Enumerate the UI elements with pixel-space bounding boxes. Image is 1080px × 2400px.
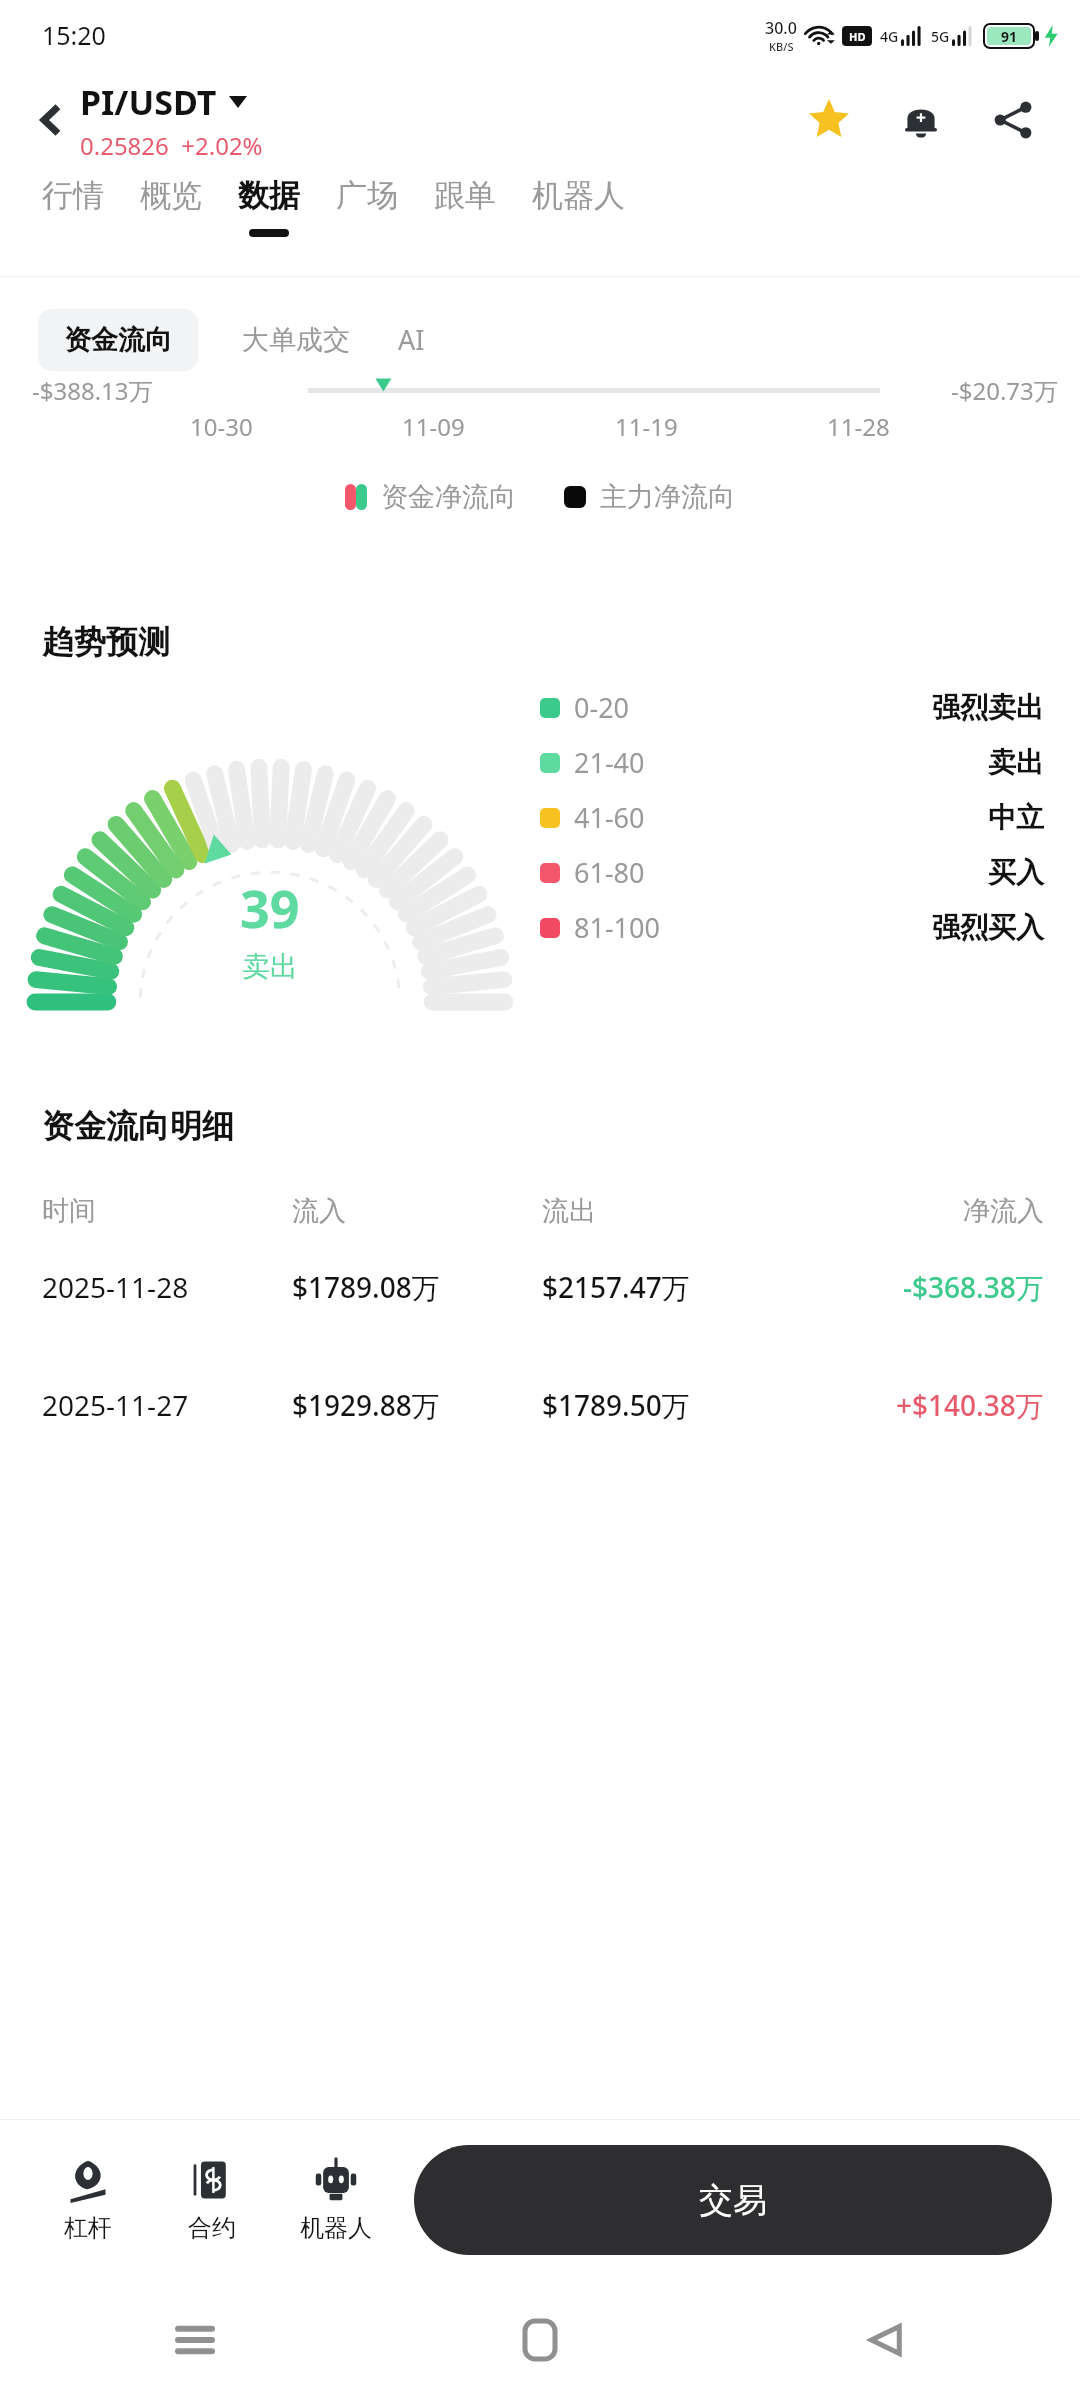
staticText: 强烈卖出: [932, 690, 1044, 725]
staticText: 时间: [42, 1194, 292, 1228]
staticText: $1789.50万: [542, 1386, 896, 1424]
staticText: 2025-11-28: [42, 1268, 292, 1306]
staticText: 21-40: [574, 744, 645, 781]
staticText: 概览: [140, 176, 202, 215]
button[interactable]: 数据: [220, 176, 318, 237]
staticText: $1929.88万: [292, 1386, 542, 1424]
staticText: 91: [1001, 27, 1018, 45]
button[interactable]: AI: [382, 307, 441, 372]
staticText: 买入: [988, 855, 1044, 890]
staticText: 强烈买入: [932, 910, 1044, 945]
button[interactable]: 大单成交: [220, 309, 372, 371]
staticText: 61-80: [574, 854, 645, 891]
staticText: +$140.38万: [896, 1386, 1044, 1424]
staticText: 机器人: [300, 2213, 372, 2243]
staticText: 卖出: [988, 745, 1044, 780]
staticText: 大单成交: [242, 323, 350, 357]
staticText: 中立: [988, 800, 1044, 835]
button[interactable]: 杠杆: [26, 2157, 150, 2243]
staticText: 主力净流向: [600, 480, 735, 514]
staticText: 41-60: [574, 799, 645, 836]
staticText: 0.25826 +2.02%: [80, 129, 263, 162]
button[interactable]: 跟单: [416, 176, 514, 237]
staticText: 81-100: [574, 909, 660, 946]
staticText: -$368.38万: [903, 1268, 1044, 1306]
staticText: 39: [240, 872, 300, 943]
staticText: 机器人: [532, 176, 625, 215]
button[interactable]: Favorite: [796, 87, 862, 153]
staticText: 0-20: [574, 689, 630, 726]
staticText: 跟单: [434, 176, 496, 215]
staticText: $2157.47万: [542, 1268, 903, 1306]
button[interactable]: Back: [840, 2295, 930, 2385]
button[interactable]: 广场: [318, 176, 416, 237]
staticText: 11-28: [827, 410, 890, 443]
staticText: 杠杆: [64, 2213, 112, 2243]
staticText: 交易: [699, 2179, 767, 2222]
button[interactable]: 资金流向: [38, 309, 198, 371]
staticText: 11-19: [615, 410, 678, 443]
staticText: -$20.73万: [951, 374, 1058, 407]
button[interactable]: PI/USDT: [80, 79, 247, 125]
staticText: 广场: [336, 176, 398, 215]
staticText: 资金净流向: [381, 480, 516, 514]
staticText: 资金流向: [64, 323, 172, 357]
staticText: 30.0: [765, 17, 797, 39]
button[interactable]: Back: [22, 92, 78, 148]
staticText: 行情: [42, 176, 104, 215]
staticText: 15:20: [42, 18, 106, 52]
staticText: KB/S: [769, 39, 794, 54]
button[interactable]: 2025-11-28: [0, 1228, 1080, 1346]
staticText: 2025-11-27: [42, 1386, 292, 1424]
staticText: 10-30: [190, 410, 253, 443]
button[interactable]: 2025-11-27: [0, 1346, 1080, 1464]
staticText: PI/USDT: [80, 79, 217, 125]
button[interactable]: 行情: [24, 176, 122, 237]
button[interactable]: 机器人: [514, 176, 643, 237]
button[interactable]: Alert: [888, 87, 954, 153]
staticText: 合约: [188, 2213, 236, 2243]
staticText: 趋势预测: [42, 622, 170, 662]
button[interactable]: 交易: [414, 2145, 1052, 2255]
staticText: -$388.13万: [32, 374, 153, 407]
staticText: $1789.08万: [292, 1268, 542, 1306]
staticText: 资金流向明细: [42, 1106, 234, 1146]
button[interactable]: 概览: [122, 176, 220, 237]
staticText: 数据: [238, 176, 300, 215]
staticText: 流入: [292, 1194, 542, 1228]
staticText: 4G: [880, 27, 899, 46]
staticText: 5G: [931, 27, 950, 46]
button[interactable]: 合约: [150, 2157, 274, 2243]
staticText: 卖出: [242, 949, 298, 984]
button[interactable]: Recents: [150, 2295, 240, 2385]
button[interactable]: 机器人: [274, 2157, 398, 2243]
button[interactable]: Home: [495, 2295, 585, 2385]
staticText: HD: [849, 29, 866, 44]
staticText: 11-09: [402, 410, 465, 443]
staticText: AI: [398, 321, 425, 358]
staticText: 流出: [542, 1194, 963, 1228]
staticText: 净流入: [963, 1194, 1044, 1228]
button[interactable]: Share: [980, 87, 1046, 153]
